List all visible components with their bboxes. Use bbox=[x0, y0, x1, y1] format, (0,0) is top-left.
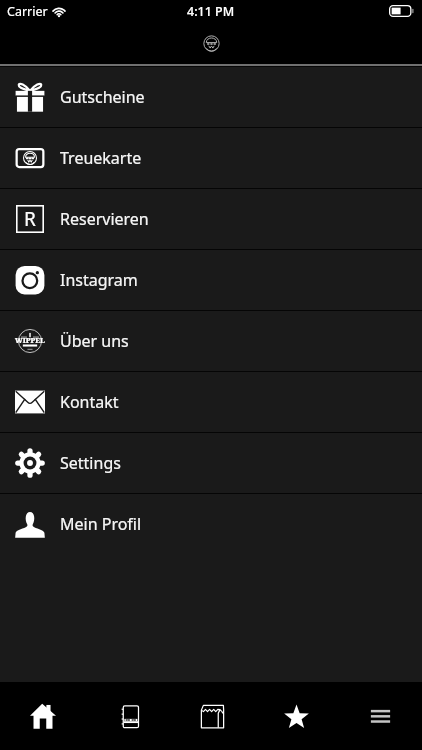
button[interactable]: Speisekarte bbox=[85, 682, 170, 750]
staticText: Treuekarte bbox=[60, 147, 142, 169]
staticText: Carrier bbox=[7, 3, 48, 20]
button[interactable]: Bestellen bbox=[170, 682, 254, 750]
button[interactable]: Mehr bbox=[338, 682, 422, 750]
staticText: Über uns bbox=[60, 330, 129, 352]
staticText: 4:11 PM bbox=[187, 3, 235, 20]
staticText: Mein Profil bbox=[60, 513, 142, 535]
staticText: Instagram bbox=[60, 269, 138, 291]
button[interactable]: Favoriten bbox=[254, 682, 338, 750]
staticText: Settings bbox=[60, 452, 121, 474]
button[interactable]: Kontakt bbox=[0, 372, 422, 432]
button[interactable]: Instagram bbox=[0, 250, 422, 310]
button[interactable]: Treuekarte bbox=[0, 128, 422, 188]
staticText: WIPPEL bbox=[15, 336, 45, 346]
button[interactable]: Gutscheine bbox=[0, 67, 422, 127]
button[interactable]: Settings bbox=[0, 433, 422, 493]
staticText: R bbox=[24, 206, 36, 232]
button[interactable]: R bbox=[0, 189, 422, 249]
button[interactable]: Home bbox=[0, 682, 85, 750]
button[interactable]: Mein Profil bbox=[0, 494, 422, 554]
button[interactable]: WIPPEL bbox=[0, 311, 422, 371]
staticText: Reservieren bbox=[60, 208, 149, 230]
staticText: Gutscheine bbox=[60, 86, 145, 108]
staticText: Kontakt bbox=[60, 391, 119, 413]
